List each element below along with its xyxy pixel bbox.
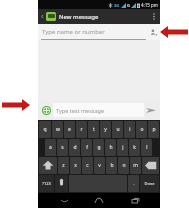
staticText: h (109, 144, 113, 151)
staticText: l (146, 144, 148, 151)
button[interactable]: n (118, 157, 129, 174)
button[interactable]: Back (40, 9, 45, 24)
button[interactable]: . (128, 175, 139, 192)
button[interactable]: Backspace (142, 157, 159, 174)
staticText: g (97, 144, 101, 151)
staticText: f (86, 144, 88, 151)
button[interactable]: j (117, 139, 128, 156)
button[interactable]: Recent apps (125, 193, 145, 208)
button[interactable]: a (45, 139, 56, 156)
button[interactable]: q (39, 121, 51, 138)
button[interactable]: u (112, 121, 123, 138)
staticText: k (133, 144, 136, 151)
staticText: G (127, 3, 130, 8)
button[interactable]: Add attachment (40, 104, 52, 116)
staticText: n (122, 162, 126, 169)
button[interactable]: Type text message (53, 103, 144, 117)
button[interactable]: Voice input (55, 175, 68, 192)
staticText: c (86, 162, 89, 169)
staticText: j (122, 144, 124, 151)
staticText: b (110, 162, 114, 169)
button[interactable]: Add contact (148, 27, 158, 37)
staticText: i (129, 126, 131, 133)
staticText: z (62, 162, 65, 169)
button[interactable]: s (57, 139, 68, 156)
button[interactable]: r (76, 121, 87, 138)
button[interactable]: m (130, 157, 141, 174)
staticText: . (133, 181, 135, 186)
staticText: Type name or number (42, 28, 148, 36)
button[interactable]: g (93, 139, 104, 156)
button[interactable]: t (88, 121, 99, 138)
staticText: ?123 (42, 181, 51, 186)
button[interactable]: y (100, 121, 111, 138)
staticText: t (93, 126, 95, 133)
staticText: a (49, 144, 52, 151)
button[interactable]: l (141, 139, 152, 156)
button[interactable]: d (69, 139, 80, 156)
button[interactable]: e (64, 121, 75, 138)
staticText: e (68, 126, 71, 133)
button[interactable]: Send (144, 102, 158, 118)
button[interactable]: k (129, 139, 140, 156)
button[interactable]: c (82, 157, 93, 174)
button[interactable]: p (148, 121, 159, 138)
button[interactable]: w (52, 121, 63, 138)
staticText: d (73, 144, 77, 151)
button[interactable]: Hide keyboard (54, 193, 74, 208)
button[interactable]: ?123 (39, 175, 54, 192)
staticText: p (152, 126, 156, 133)
staticText: New message (59, 13, 99, 21)
button[interactable]: Type name or number (38, 24, 160, 40)
button[interactable]: v (94, 157, 105, 174)
staticText: u (116, 126, 120, 133)
staticText: 4:15 pm (141, 2, 159, 8)
staticText: m (133, 162, 138, 169)
button[interactable]: f (81, 139, 92, 156)
button[interactable]: i (124, 121, 135, 138)
button[interactable]: Home (89, 193, 109, 208)
button[interactable]: h (105, 139, 116, 156)
staticText: v (98, 162, 101, 169)
staticText: 3G (114, 3, 120, 8)
button[interactable]: b (106, 157, 117, 174)
button[interactable]: z (58, 157, 69, 174)
staticText: y (104, 126, 107, 133)
staticText: w (56, 126, 60, 133)
staticText: Type text message (56, 107, 105, 114)
button[interactable]: Done (140, 175, 159, 192)
button[interactable]: o (136, 121, 147, 138)
staticText: o (140, 126, 144, 133)
staticText: x (74, 162, 77, 169)
button[interactable]: More options (150, 9, 158, 24)
button[interactable]: x (70, 157, 81, 174)
staticText: s (61, 144, 64, 151)
staticText: Done (144, 181, 155, 186)
staticText: r (80, 126, 83, 133)
button[interactable]: Shift (39, 157, 57, 174)
staticText: q (43, 126, 47, 133)
